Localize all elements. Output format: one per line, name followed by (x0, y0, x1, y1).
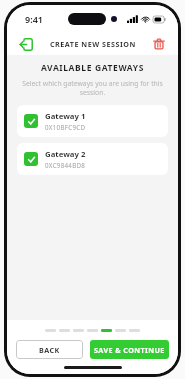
button[interactable]: Gateway 1 (17, 105, 168, 137)
button[interactable]: Leave session (16, 34, 36, 54)
staticText: BACK (39, 345, 60, 355)
button[interactable]: BACK (16, 340, 83, 359)
staticText: Gateway 1 (45, 111, 86, 122)
staticText: Select which gateways you are using for … (17, 79, 168, 97)
staticText: 9:41 (25, 13, 43, 25)
button[interactable]: SAVE & CONTINUE (90, 340, 169, 359)
staticText: Gateway 2 (45, 149, 86, 160)
staticText: SAVE & CONTINUE (94, 345, 165, 355)
staticText: CREATE NEW SESSION (50, 39, 136, 49)
button[interactable]: Gateway 2 (17, 143, 168, 175)
button[interactable]: Delete session (149, 34, 169, 54)
staticText: 0XC9844BD8 (45, 161, 86, 169)
staticText: 0X10BFC9CD (45, 123, 86, 131)
staticText: AVAILABLE GATEWAYS (7, 62, 178, 74)
